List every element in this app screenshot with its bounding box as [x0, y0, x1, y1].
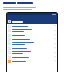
other: Download	[54, 60, 56, 62]
button[interactable]: Document	[7, 50, 57, 55]
other: Download	[54, 30, 56, 32]
button[interactable]: Document	[7, 37, 57, 41]
other: Download	[54, 25, 56, 27]
other: Download	[54, 43, 56, 45]
other: Download	[54, 38, 56, 40]
other: Download	[54, 34, 56, 36]
button[interactable]: App title	[8, 20, 23, 23]
button[interactable]: Document	[7, 24, 57, 28]
other: Document	[8, 60, 11, 63]
other: Download	[54, 52, 56, 54]
button[interactable]: Document	[7, 46, 57, 50]
other: Download	[54, 47, 56, 49]
other: Download	[54, 56, 56, 58]
button[interactable]: Document	[7, 55, 57, 59]
button[interactable]: Document	[7, 59, 57, 63]
button[interactable]: Document	[7, 41, 57, 46]
button[interactable]: Document	[7, 33, 57, 37]
button[interactable]: Document	[7, 28, 57, 33]
